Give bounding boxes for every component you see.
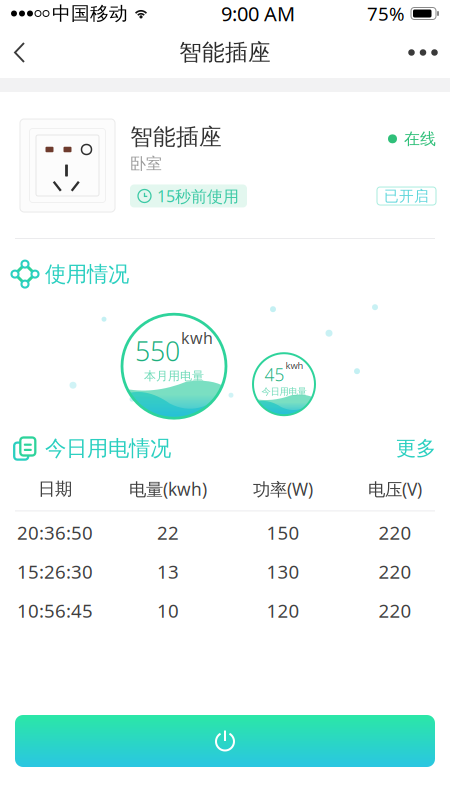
staticText: 电量(kwh) — [129, 477, 207, 500]
staticText: 220 — [378, 559, 411, 584]
button[interactable]: 电源开关 — [15, 715, 435, 767]
staticText: 130 — [266, 559, 299, 584]
staticText: 卧室 — [130, 154, 162, 173]
staticText: 智能插座 — [130, 123, 222, 151]
staticText: 550 — [135, 333, 180, 368]
staticText: 在线 — [404, 129, 436, 149]
staticText: 本月用电量 — [144, 368, 204, 383]
staticText: 电压(V) — [368, 477, 422, 500]
staticText: 今日用电量 — [261, 386, 306, 397]
button[interactable]: 更多 — [396, 436, 436, 461]
staticText: 已开启 — [384, 187, 429, 205]
button[interactable]: 返回 — [0, 27, 39, 78]
staticText: 150 — [266, 520, 299, 545]
staticText: 更多 — [396, 436, 436, 461]
staticText: 10 — [157, 598, 179, 623]
staticText: 15秒前使用 — [157, 185, 239, 207]
staticText: 日期 — [38, 478, 72, 500]
staticText: 中国移动 — [52, 2, 128, 25]
staticText: 13 — [157, 559, 179, 584]
staticText: 9:00 AM — [221, 0, 295, 27]
staticText: 功率(W) — [253, 477, 313, 500]
staticText: 22 — [157, 520, 179, 545]
staticText: 120 — [266, 598, 299, 623]
button[interactable]: 更多选项 — [396, 27, 450, 78]
staticText: 今日用电情况 — [45, 435, 171, 461]
staticText: kwh — [285, 359, 303, 371]
staticText: 20:36:50 — [17, 520, 93, 545]
staticText: 智能插座 — [179, 39, 271, 66]
staticText: 10:56:45 — [17, 598, 93, 623]
staticText: 15:26:30 — [17, 559, 93, 584]
staticText: 45 — [264, 363, 284, 386]
staticText: 220 — [378, 598, 411, 623]
staticText: 220 — [378, 520, 411, 545]
staticText: 使用情况 — [45, 261, 129, 287]
staticText: 75% — [367, 1, 405, 26]
staticText: kwh — [181, 327, 213, 348]
